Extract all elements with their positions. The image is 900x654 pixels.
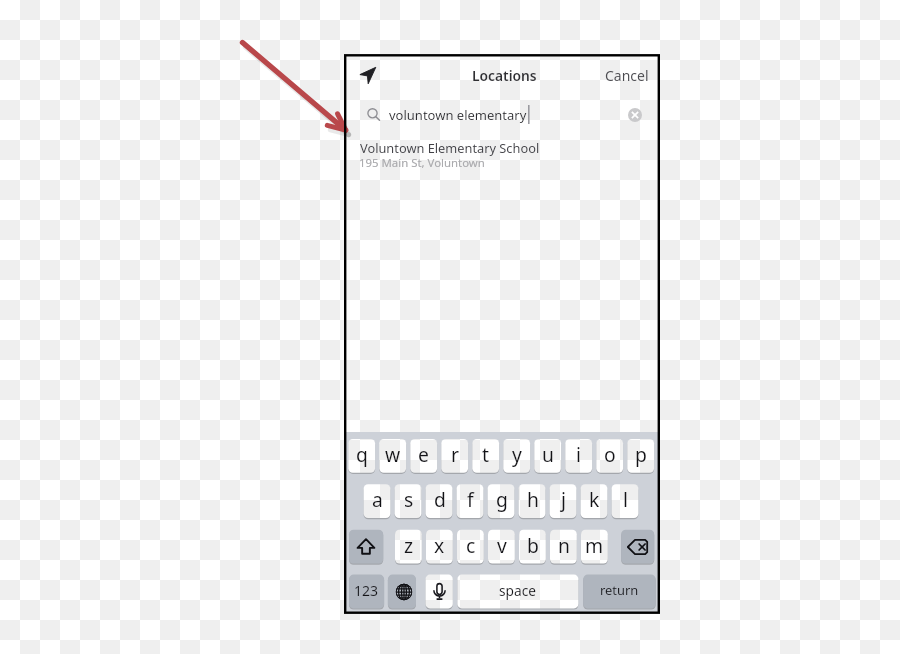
button[interactable]: Cancel (605, 66, 649, 85)
staticText: e (418, 441, 429, 467)
button[interactable]: z (395, 530, 422, 564)
button[interactable]: y (503, 439, 530, 473)
button[interactable]: Backspace (621, 530, 654, 564)
staticText: c (466, 532, 476, 558)
staticText: i (576, 441, 581, 467)
staticText: q (356, 441, 368, 467)
button[interactable]: u (534, 439, 561, 473)
button[interactable]: j (550, 484, 577, 518)
button[interactable]: Dictate (426, 575, 453, 609)
staticText: m (585, 532, 604, 558)
button[interactable]: h (519, 484, 546, 518)
staticText: voluntown elementary (389, 106, 527, 124)
staticText: l (623, 486, 628, 512)
staticText: f (467, 486, 474, 512)
button[interactable]: o (596, 439, 623, 473)
button[interactable]: Clear search (628, 108, 642, 122)
staticText: w (385, 441, 401, 467)
staticText: g (496, 486, 508, 512)
staticText: Locations (472, 66, 537, 85)
button[interactable]: v (488, 530, 515, 564)
button[interactable]: b (519, 530, 546, 564)
staticText: Cancel (605, 66, 649, 85)
button[interactable]: i (565, 439, 592, 473)
button[interactable]: k (581, 484, 608, 518)
button[interactable]: g (488, 484, 515, 518)
button[interactable]: p (627, 439, 654, 473)
button[interactable]: 123 (349, 575, 384, 609)
button[interactable]: t (472, 439, 499, 473)
staticText: j (561, 486, 566, 512)
button[interactable]: Shift (349, 530, 383, 564)
button[interactable]: space (457, 575, 578, 609)
button[interactable]: Current location (353, 59, 389, 95)
staticText: space (499, 581, 536, 600)
button[interactable]: e (410, 439, 437, 473)
button[interactable]: s (395, 484, 422, 518)
staticText: h (527, 486, 539, 512)
staticText: y (512, 441, 522, 467)
button[interactable]: x (426, 530, 453, 564)
button[interactable]: return (583, 575, 656, 609)
staticText: n (558, 532, 570, 558)
staticText: 195 Main St, Voluntown (359, 155, 485, 171)
staticText: s (404, 486, 414, 512)
button[interactable]: n (550, 530, 577, 564)
staticText: a (372, 486, 383, 512)
button[interactable]: w (379, 439, 406, 473)
button[interactable]: Voluntown Elementary School (353, 137, 649, 173)
staticText: return (600, 581, 639, 599)
staticText: 123 (354, 581, 379, 600)
button[interactable]: f (457, 484, 484, 518)
staticText: d (434, 486, 446, 512)
button[interactable]: a (364, 484, 391, 518)
staticText: p (635, 441, 647, 467)
staticText: x (434, 532, 445, 558)
button[interactable]: q (348, 439, 375, 473)
staticText: k (589, 486, 600, 512)
staticText: b (527, 532, 539, 558)
staticText: r (451, 441, 459, 467)
button[interactable]: l (612, 484, 639, 518)
staticText: u (542, 441, 554, 467)
button[interactable]: Change keyboard (388, 575, 416, 609)
button[interactable]: m (581, 530, 608, 564)
button[interactable]: r (441, 439, 468, 473)
button[interactable]: d (426, 484, 453, 518)
button[interactable]: voluntown elementary (353, 99, 621, 129)
staticText: z (404, 532, 414, 558)
staticText: Voluntown Elementary School (360, 139, 540, 156)
button[interactable]: c (457, 530, 484, 564)
staticText: t (482, 441, 489, 467)
staticText: o (604, 441, 616, 467)
staticText: v (497, 532, 507, 558)
